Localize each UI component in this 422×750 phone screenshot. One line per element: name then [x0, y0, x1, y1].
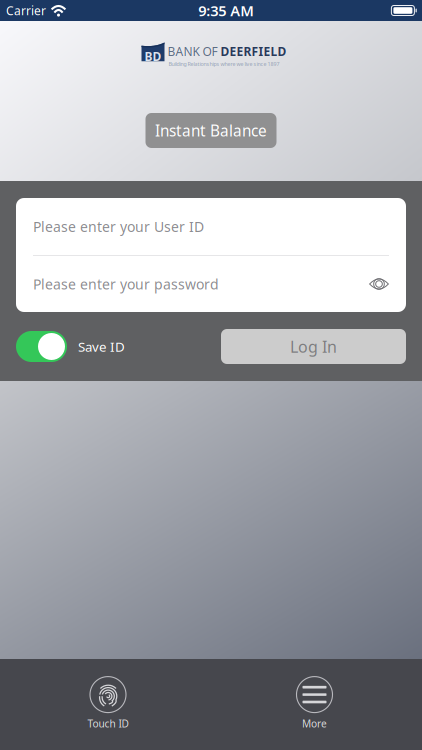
button[interactable]: Touch ID [53, 673, 163, 733]
staticText: BD [144, 48, 161, 64]
button[interactable]: Please enter your User ID [16, 198, 406, 255]
staticText: BANK OF [167, 43, 217, 59]
staticText: Save ID [78, 337, 125, 356]
button[interactable]: Instant Balance [145, 113, 276, 148]
staticText: DEERFIELD [220, 43, 286, 59]
button[interactable]: Please enter your password [16, 256, 406, 312]
button[interactable]: Save ID [16, 331, 125, 362]
staticText: Carrier [6, 2, 46, 19]
button[interactable]: Log In [221, 329, 406, 364]
staticText: Touch ID [87, 717, 128, 730]
staticText: More [302, 717, 327, 730]
staticText: Please enter your password [33, 274, 219, 294]
staticText: Log In [290, 336, 337, 357]
button[interactable]: More [259, 673, 369, 733]
staticText: Building Relationships where we live sin… [168, 60, 279, 67]
staticText: Instant Balance [155, 120, 267, 141]
staticText: Please enter your User ID [33, 217, 204, 236]
staticText: 9:35 AM [198, 0, 254, 20]
